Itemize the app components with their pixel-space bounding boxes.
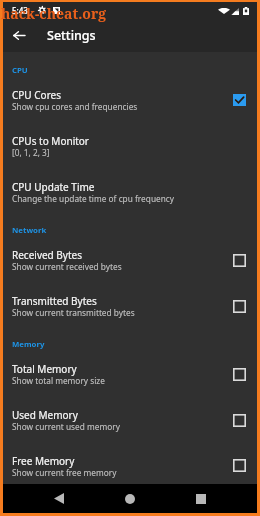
- button[interactable]: Recent apps: [186, 484, 215, 513]
- button[interactable]: CPU Cores: [3, 74, 257, 120]
- button[interactable]: Used Memory: [228, 409, 250, 431]
- button[interactable]: CPUs to Monitor: [3, 120, 257, 166]
- button[interactable]: Back: [3, 19, 34, 52]
- staticText: [0, 1, 2, 3]: [12, 147, 50, 158]
- staticText: hack-cheat.org: [1, 4, 107, 23]
- button[interactable]: Transmitted Bytes: [3, 280, 257, 326]
- staticText: Show cpu cores and frequencies: [12, 101, 138, 112]
- staticText: Transmitted Bytes: [12, 294, 97, 308]
- staticText: Show total memory size: [12, 375, 105, 386]
- button[interactable]: Home: [115, 484, 144, 513]
- button[interactable]: CPU Cores: [228, 89, 250, 111]
- staticText: Network: [12, 225, 47, 236]
- staticText: Change the update time of cpu frequency: [12, 193, 175, 204]
- button[interactable]: Transmitted Bytes: [228, 295, 250, 317]
- staticText: Memory: [12, 339, 45, 350]
- staticText: CPU Cores: [12, 88, 62, 102]
- button[interactable]: Received Bytes: [3, 234, 257, 280]
- staticText: CPU: [12, 65, 28, 76]
- staticText: Free Memory: [12, 454, 75, 468]
- button[interactable]: Received Bytes: [228, 249, 250, 271]
- button[interactable]: Free Memory: [228, 454, 250, 476]
- staticText: Show current free memory: [12, 467, 117, 478]
- button[interactable]: Total Memory: [3, 348, 257, 394]
- staticText: Show current used memory: [12, 421, 120, 432]
- button[interactable]: Total Memory: [228, 363, 250, 385]
- staticText: Used Memory: [12, 408, 78, 422]
- staticText: Total Memory: [12, 362, 77, 376]
- staticText: CPUs to Monitor: [12, 134, 89, 148]
- staticText: CPU Update Time: [12, 180, 95, 194]
- staticText: 5:43: [12, 5, 28, 16]
- button[interactable]: Used Memory: [3, 394, 257, 440]
- button[interactable]: Back: [44, 484, 73, 513]
- staticText: Settings: [47, 27, 96, 44]
- staticText: Received Bytes: [12, 248, 82, 262]
- button[interactable]: Free Memory: [3, 440, 257, 484]
- button[interactable]: CPU Update Time: [3, 166, 257, 212]
- staticText: Show current transmitted bytes: [12, 307, 135, 318]
- staticText: Show current received bytes: [12, 261, 122, 272]
